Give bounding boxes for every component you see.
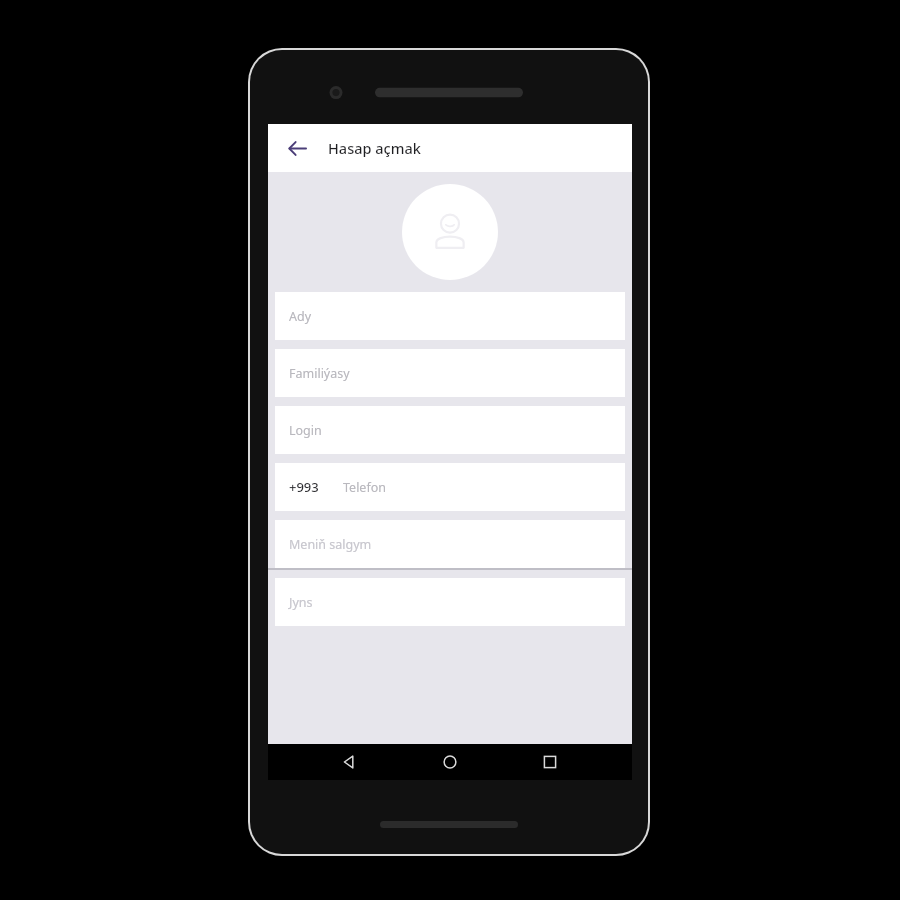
button[interactable]: Jyns [275,578,625,626]
staticText: Meniň salgym [289,536,372,553]
button[interactable]: Back [332,744,368,780]
staticText: Ady [289,308,312,325]
staticText: Jyns [289,594,313,611]
button[interactable]: Profile photo [402,184,498,280]
button[interactable]: Ady [275,292,625,340]
button[interactable]: Home [432,744,468,780]
staticText: Familiýasy [289,365,350,382]
staticText: Telefon [343,479,386,496]
button[interactable]: Familiýasy [275,349,625,397]
staticText: +993 [289,478,319,496]
staticText: Hasap açmak [328,138,421,158]
button[interactable]: Recent apps [532,744,568,780]
button[interactable]: Login [275,406,625,454]
staticText: Login [289,422,322,439]
button[interactable]: Back [280,131,314,165]
button[interactable]: Meniň salgym [275,520,625,568]
button[interactable]: +993 [275,463,625,511]
